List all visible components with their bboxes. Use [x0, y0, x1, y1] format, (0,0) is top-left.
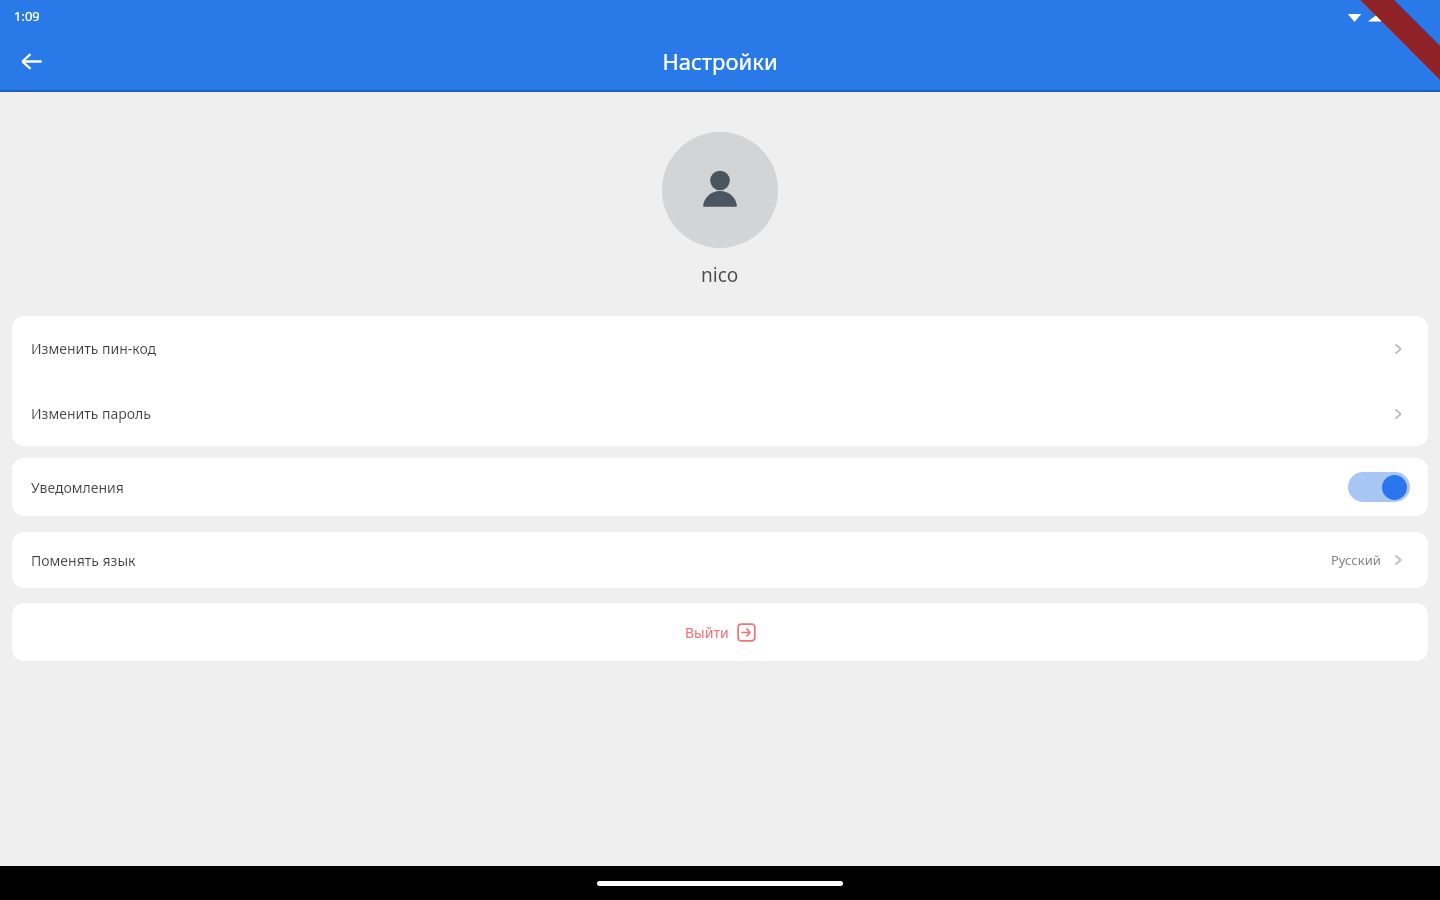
staticText: Поменять язык	[31, 551, 136, 570]
staticText: 1:09	[14, 7, 40, 25]
button[interactable]: Back	[9, 39, 53, 83]
staticText: nico	[701, 262, 739, 288]
staticText: Выйти	[685, 623, 729, 642]
button[interactable]: Изменить пин-код	[12, 316, 1428, 381]
staticText: Изменить пароль	[31, 404, 151, 423]
button[interactable]: Уведомления	[12, 458, 1428, 516]
button[interactable]: Изменить пароль	[12, 381, 1428, 446]
button[interactable]: Notifications toggle	[1348, 472, 1410, 502]
button[interactable]: Поменять язык	[12, 532, 1428, 588]
staticText: Русский	[1331, 551, 1381, 569]
staticText: Настройки	[662, 46, 778, 76]
staticText: Уведомления	[31, 478, 124, 497]
button[interactable]: Выйти	[12, 603, 1428, 661]
staticText: Изменить пин-код	[31, 339, 157, 358]
